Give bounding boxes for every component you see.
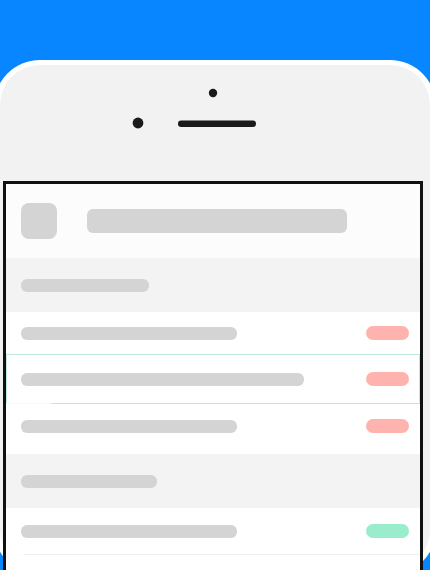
- button[interactable]: Section header: [6, 258, 420, 312]
- button[interactable]: List item: [6, 404, 420, 448]
- button[interactable]: List item: [6, 312, 420, 354]
- button[interactable]: Account header: [6, 184, 420, 258]
- button[interactable]: List item: [6, 355, 420, 403]
- button[interactable]: Section header: [6, 454, 420, 508]
- button[interactable]: List item: [6, 508, 420, 554]
